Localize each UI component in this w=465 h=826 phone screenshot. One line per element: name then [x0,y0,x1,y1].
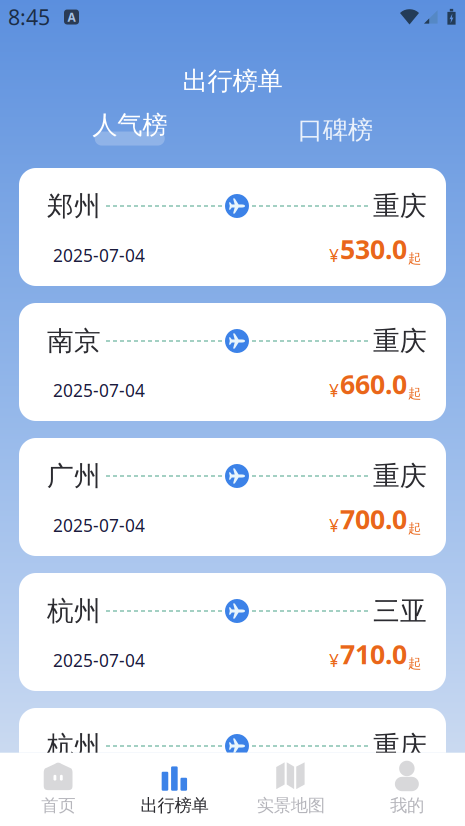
staticText: 2025-07-04 [53,649,145,672]
staticText: 南京 [47,325,101,357]
staticText: 首页 [41,795,75,816]
staticText: 我的 [390,795,424,816]
staticText: 710.0 [340,636,407,672]
staticText: ¥ [329,514,339,537]
staticText: 人气榜 [92,109,167,140]
staticText: 口碑榜 [298,114,373,145]
button[interactable]: 南京 [19,303,446,421]
staticText: 实景地图 [257,795,325,816]
staticText: 重庆 [373,460,427,492]
button[interactable]: 出行榜单 [116,761,232,816]
button[interactable]: 人气榜 [87,110,173,150]
staticText: 重庆 [373,190,427,222]
staticText: 出行榜单 [140,795,208,816]
staticText: 起 [408,790,421,807]
staticText: A [67,9,75,25]
staticText: ¥ [329,244,339,267]
button[interactable]: 广州 [19,438,446,556]
staticText: 重庆 [373,730,427,762]
staticText: ¥ [329,649,339,672]
button[interactable]: 首页 [0,761,116,816]
staticText: 8:45 [8,3,50,31]
staticText: 杭州 [47,595,101,627]
staticText: 2025-07-04 [53,244,145,267]
staticText: 720.0 [340,771,407,807]
staticText: 重庆 [373,325,427,357]
button[interactable]: 杭州 [19,708,446,826]
staticText: ¥ [329,379,339,402]
staticText: 2025-07-04 [53,784,145,807]
staticText: 郑州 [47,190,101,222]
staticText: 出行榜单 [182,65,282,96]
staticText: 起 [408,655,421,672]
staticText: 广州 [47,460,101,492]
staticText: 杭州 [47,730,101,762]
button[interactable]: 郑州 [19,168,446,286]
staticText: 起 [408,520,421,537]
button[interactable]: 我的 [349,761,465,816]
staticText: 起 [408,385,421,402]
button[interactable]: 杭州 [19,573,446,691]
staticText: 660.0 [340,366,407,402]
staticText: 530.0 [340,231,407,267]
button[interactable]: 实景地图 [232,761,349,816]
staticText: 三亚 [373,595,427,627]
staticText: 2025-07-04 [53,514,145,537]
staticText: 起 [408,250,421,267]
staticText: 2025-07-04 [53,379,145,402]
button[interactable]: 口碑榜 [292,110,378,150]
staticText: 700.0 [340,501,407,537]
